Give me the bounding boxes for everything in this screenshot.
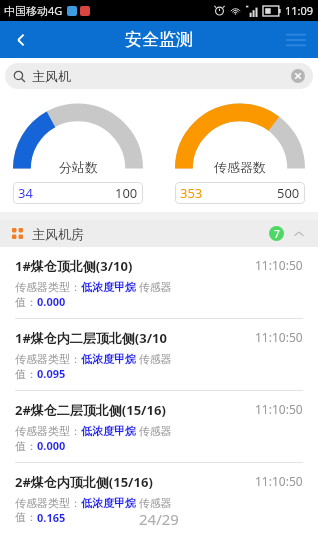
button[interactable]: 主风机 — [5, 63, 313, 89]
staticText: 传感器类型： — [15, 280, 81, 294]
staticText: 11:10:50 — [255, 473, 303, 489]
staticText: 1#煤仓顶北侧(3/10) — [15, 257, 255, 275]
staticText: 值： — [15, 367, 37, 381]
staticText: 2#煤仓二层顶北侧(15/16) — [15, 401, 255, 419]
staticText: 7 — [274, 227, 280, 241]
staticText: 11:09 — [285, 3, 314, 18]
staticText: 11:10:50 — [255, 401, 303, 417]
staticText: 100 — [115, 184, 138, 202]
staticText: 传感器类型： — [15, 496, 81, 510]
button[interactable]: 2#煤仓内顶北侧(15/16) — [0, 463, 318, 533]
staticText: 传感器数 — [214, 159, 266, 175]
button[interactable]: 主风机房 — [0, 220, 318, 247]
staticText: 353 — [180, 184, 203, 202]
staticText: 传感器类型： — [15, 352, 81, 366]
staticText: 安全监测 — [125, 29, 193, 50]
staticText: 主风机 — [32, 68, 71, 84]
staticText: 值： — [15, 295, 37, 309]
staticText: 传感器 — [136, 495, 172, 510]
button[interactable]: Back — [0, 21, 44, 58]
staticText: 低浓度甲烷 — [81, 424, 136, 438]
staticText: 0.000 — [37, 294, 66, 309]
staticText: 24/29 — [139, 509, 179, 529]
staticText: 34 — [18, 184, 33, 202]
staticText: 2#煤仓内顶北侧(15/16) — [15, 473, 255, 491]
button[interactable]: Clear — [291, 69, 305, 83]
staticText: 分站数 — [59, 159, 98, 175]
staticText: 11:10:50 — [255, 329, 303, 345]
staticText: 0.095 — [37, 366, 66, 381]
staticText: 主风机房 — [32, 226, 84, 242]
staticText: 500 — [277, 184, 300, 202]
staticText: 低浓度甲烷 — [81, 496, 136, 510]
button[interactable]: 传感器数 — [175, 100, 305, 204]
staticText: 0.000 — [37, 438, 66, 453]
button[interactable]: 1#煤仓顶北侧(3/10) — [0, 247, 318, 318]
staticText: 传感器 — [136, 351, 172, 366]
staticText: 传感器类型： — [15, 424, 81, 438]
button[interactable]: Collapse — [292, 227, 306, 241]
staticText: 0.165 — [37, 510, 66, 524]
staticText: 值： — [15, 439, 37, 453]
staticText: 传感器 — [136, 423, 172, 438]
staticText: 传感器 — [136, 279, 172, 294]
staticText: 1#煤仓内二层顶北侧(3/10 — [15, 329, 255, 347]
button[interactable]: 分站数 — [13, 100, 143, 204]
button[interactable]: 2#煤仓二层顶北侧(15/16) — [0, 391, 318, 462]
staticText: 低浓度甲烷 — [81, 280, 136, 294]
staticText: 11:10:50 — [255, 257, 303, 273]
staticText: 低浓度甲烷 — [81, 352, 136, 366]
staticText: 值： — [15, 510, 37, 524]
staticText: 中国移动4G — [4, 3, 63, 18]
button[interactable]: Menu — [274, 21, 318, 58]
button[interactable]: 1#煤仓内二层顶北侧(3/10 — [0, 319, 318, 390]
